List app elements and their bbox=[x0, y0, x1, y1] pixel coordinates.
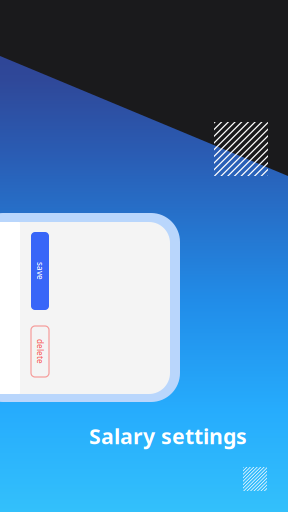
button[interactable]: save bbox=[31, 232, 49, 310]
button[interactable]: delete bbox=[31, 326, 49, 377]
staticText: save bbox=[31, 266, 49, 276]
staticText: Salary settings bbox=[89, 422, 247, 450]
staticText: delete bbox=[27, 346, 52, 357]
